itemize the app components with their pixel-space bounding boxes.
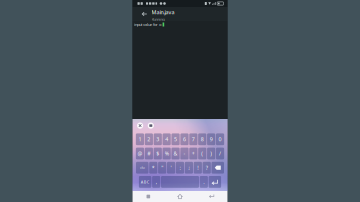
staticText: % bbox=[165, 150, 169, 157]
staticText: # bbox=[147, 150, 150, 157]
staticText: =\< bbox=[140, 165, 145, 170]
button[interactable]: 8 bbox=[198, 133, 206, 145]
staticText: 1 bbox=[138, 136, 141, 143]
button[interactable]: ' bbox=[167, 162, 175, 174]
button[interactable] bbox=[161, 176, 199, 188]
button[interactable]: : bbox=[176, 162, 184, 174]
button[interactable]: Backspace bbox=[211, 162, 224, 174]
button[interactable]: ) bbox=[207, 148, 215, 159]
button[interactable]: Close keyboard bbox=[137, 122, 143, 129]
staticText: 7 bbox=[192, 136, 195, 143]
button[interactable]: % bbox=[162, 148, 171, 159]
button[interactable]: ! bbox=[194, 162, 202, 174]
staticText: Main.java bbox=[151, 9, 174, 16]
button[interactable]: Home bbox=[164, 191, 196, 202]
staticText: 6 bbox=[183, 136, 186, 143]
staticText: @ bbox=[137, 150, 142, 157]
button[interactable]: - bbox=[180, 148, 188, 159]
staticText: 2 bbox=[147, 136, 150, 143]
button[interactable]: 3 bbox=[154, 133, 162, 145]
staticText: 9 bbox=[210, 136, 213, 143]
button[interactable]: 0 bbox=[216, 133, 224, 145]
button[interactable]: * bbox=[149, 162, 157, 174]
staticText: , bbox=[156, 178, 157, 185]
button[interactable]: Back bbox=[137, 7, 151, 21]
button[interactable]: Return bbox=[209, 176, 221, 188]
button[interactable]: # bbox=[145, 148, 153, 159]
button[interactable]: , bbox=[152, 176, 160, 188]
button[interactable]: Back bbox=[196, 191, 227, 202]
staticText: ! bbox=[197, 164, 198, 171]
button[interactable]: ? bbox=[203, 162, 211, 174]
button[interactable]: 7 bbox=[189, 133, 197, 145]
staticText: 5 bbox=[174, 136, 177, 143]
button[interactable]: 9 bbox=[207, 133, 215, 145]
button[interactable]: ; bbox=[185, 162, 193, 174]
button[interactable]: & bbox=[171, 148, 180, 159]
button[interactable]: 2 bbox=[145, 133, 153, 145]
button[interactable]: =\< bbox=[136, 162, 148, 174]
button[interactable]: 6 bbox=[180, 133, 188, 145]
staticText: $ bbox=[156, 150, 159, 157]
staticText: / bbox=[219, 150, 221, 157]
staticText: * bbox=[152, 164, 155, 171]
staticText: ' bbox=[171, 164, 172, 171]
staticText: ( bbox=[201, 150, 203, 157]
button[interactable]: 5 bbox=[171, 133, 180, 145]
staticText: ) bbox=[210, 150, 212, 157]
staticText: . bbox=[203, 178, 204, 185]
button[interactable]: Recents bbox=[132, 191, 164, 202]
button[interactable]: 4 bbox=[162, 133, 171, 145]
staticText: 4 bbox=[165, 136, 168, 143]
staticText: 8 bbox=[201, 136, 204, 143]
staticText: & bbox=[173, 150, 177, 157]
button[interactable]: " bbox=[158, 162, 166, 174]
staticText: ABC bbox=[141, 179, 150, 184]
staticText: ; bbox=[188, 164, 189, 171]
button[interactable]: / bbox=[216, 148, 224, 159]
button[interactable]: $ bbox=[154, 148, 162, 159]
staticText: Running bbox=[151, 17, 164, 22]
button[interactable]: 1 bbox=[136, 133, 144, 145]
staticText: input value for x: bbox=[134, 22, 162, 27]
staticText: " bbox=[161, 164, 163, 171]
button[interactable]: ABC bbox=[139, 176, 151, 188]
button[interactable]: @ bbox=[136, 148, 144, 159]
button[interactable]: ( bbox=[198, 148, 206, 159]
button[interactable]: . bbox=[200, 176, 208, 188]
staticText: ? bbox=[206, 164, 208, 171]
staticText: 0 bbox=[218, 136, 221, 143]
staticText: 3 bbox=[156, 136, 159, 143]
button[interactable]: + bbox=[189, 148, 197, 159]
staticText: + bbox=[192, 150, 195, 157]
staticText: - bbox=[183, 150, 185, 157]
button[interactable]: Keyboard theme bbox=[148, 122, 154, 129]
